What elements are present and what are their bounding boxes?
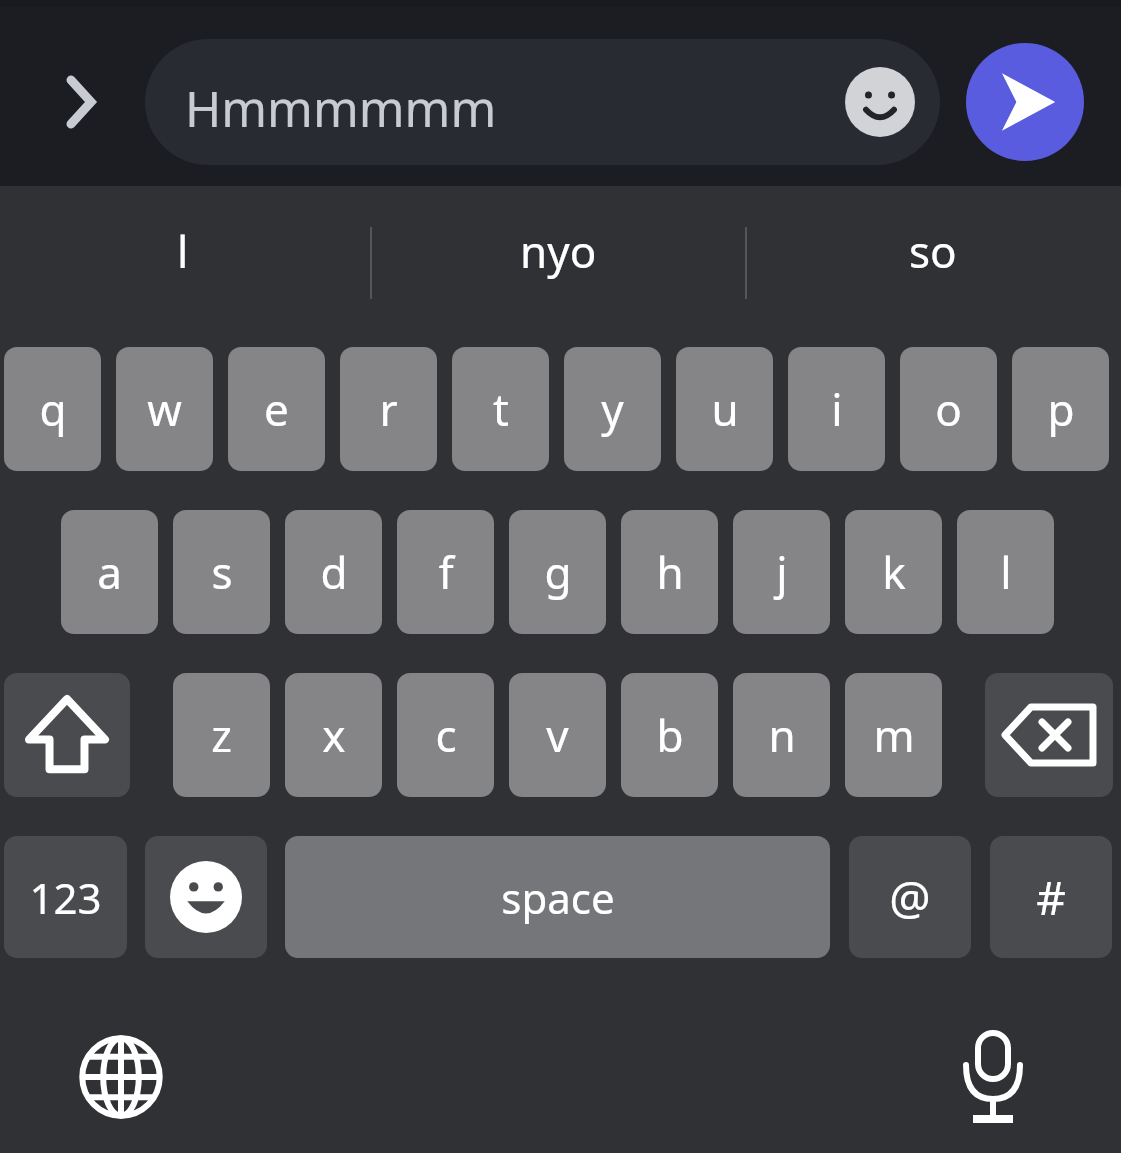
button[interactable]: z bbox=[173, 673, 270, 797]
button[interactable]: w bbox=[116, 347, 213, 471]
button[interactable]: Change language bbox=[61, 1017, 181, 1137]
staticText: q bbox=[39, 379, 67, 439]
staticText: space bbox=[501, 869, 615, 926]
staticText: k bbox=[882, 542, 906, 602]
button[interactable]: Hmmmmmm bbox=[145, 39, 940, 165]
staticText: e bbox=[264, 379, 289, 439]
staticText: p bbox=[1047, 379, 1075, 439]
staticText: j bbox=[776, 542, 788, 602]
staticText: a bbox=[97, 542, 122, 602]
staticText: s bbox=[211, 542, 233, 602]
button[interactable]: r bbox=[340, 347, 437, 471]
button[interactable]: x bbox=[285, 673, 382, 797]
button[interactable]: Voice input bbox=[933, 1017, 1053, 1137]
staticText: l bbox=[177, 221, 189, 281]
staticText: d bbox=[320, 542, 348, 602]
button[interactable]: p bbox=[1012, 347, 1109, 471]
button[interactable]: Expand bbox=[46, 66, 114, 138]
button[interactable]: g bbox=[509, 510, 606, 634]
button[interactable]: s bbox=[173, 510, 270, 634]
staticText: n bbox=[768, 705, 796, 765]
staticText: y bbox=[601, 379, 624, 439]
staticText: f bbox=[438, 542, 454, 602]
staticText: l bbox=[1000, 542, 1012, 602]
button[interactable]: t bbox=[452, 347, 549, 471]
staticText: r bbox=[379, 379, 398, 439]
staticText: c bbox=[435, 705, 457, 765]
button[interactable]: l bbox=[957, 510, 1054, 634]
button[interactable]: nyo bbox=[378, 186, 738, 316]
button[interactable]: u bbox=[676, 347, 773, 471]
button[interactable]: Backspace bbox=[985, 673, 1113, 797]
staticText: 123 bbox=[29, 869, 102, 926]
staticText: o bbox=[935, 379, 962, 439]
staticText: so bbox=[909, 221, 957, 281]
staticText: w bbox=[147, 379, 182, 439]
button[interactable]: space bbox=[285, 836, 830, 958]
button[interactable]: Emoji bbox=[845, 67, 915, 137]
button[interactable]: m bbox=[845, 673, 942, 797]
button[interactable]: so bbox=[753, 186, 1113, 316]
staticText: t bbox=[493, 379, 509, 439]
button[interactable]: @ bbox=[849, 836, 971, 958]
button[interactable]: 123 bbox=[4, 836, 127, 958]
staticText: i bbox=[831, 379, 843, 439]
staticText: Hmmmmmm bbox=[185, 75, 497, 142]
staticText: g bbox=[544, 542, 572, 602]
staticText: h bbox=[656, 542, 684, 602]
button[interactable]: k bbox=[845, 510, 942, 634]
staticText: v bbox=[546, 705, 569, 765]
button[interactable]: a bbox=[61, 510, 158, 634]
button[interactable]: i bbox=[788, 347, 885, 471]
staticText: # bbox=[1036, 866, 1066, 929]
staticText: b bbox=[656, 705, 684, 765]
button[interactable]: b bbox=[621, 673, 718, 797]
button[interactable]: e bbox=[228, 347, 325, 471]
button[interactable]: Send bbox=[966, 43, 1084, 161]
button[interactable]: o bbox=[900, 347, 997, 471]
button[interactable]: Emoji keyboard bbox=[145, 836, 267, 958]
button[interactable]: # bbox=[990, 836, 1112, 958]
button[interactable]: l bbox=[3, 186, 363, 316]
staticText: z bbox=[211, 705, 232, 765]
button[interactable]: n bbox=[733, 673, 830, 797]
button[interactable]: j bbox=[733, 510, 830, 634]
button[interactable]: c bbox=[397, 673, 494, 797]
button[interactable]: v bbox=[509, 673, 606, 797]
button[interactable]: f bbox=[397, 510, 494, 634]
staticText: nyo bbox=[520, 221, 597, 281]
button[interactable]: Shift bbox=[4, 673, 130, 797]
staticText: m bbox=[873, 705, 915, 765]
button[interactable]: h bbox=[621, 510, 718, 634]
staticText: u bbox=[711, 379, 739, 439]
button[interactable]: d bbox=[285, 510, 382, 634]
button[interactable]: y bbox=[564, 347, 661, 471]
staticText: x bbox=[322, 705, 346, 765]
staticText: @ bbox=[889, 866, 931, 929]
button[interactable]: q bbox=[4, 347, 101, 471]
